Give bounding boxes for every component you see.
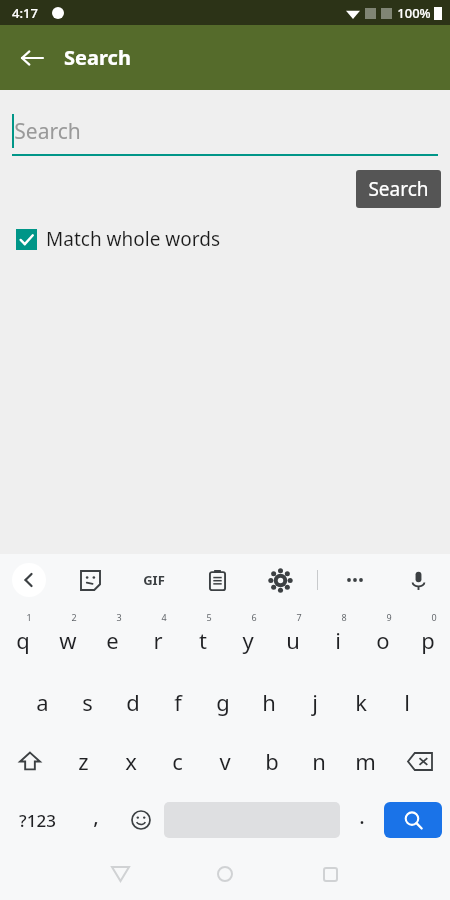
button[interactable]: Home	[205, 854, 245, 894]
button[interactable]: 6	[225, 606, 270, 668]
button[interactable]: 0	[405, 606, 450, 668]
button[interactable]: Collapse toolbar	[12, 563, 46, 597]
button[interactable]: Back	[100, 854, 140, 894]
button[interactable]: 5	[180, 606, 225, 668]
button[interactable]: n	[295, 730, 342, 792]
staticText: a	[36, 687, 49, 717]
staticText: 100%	[397, 4, 431, 22]
staticText: j	[312, 687, 318, 717]
button[interactable]: Back	[10, 36, 54, 80]
staticText: ?123	[19, 809, 56, 832]
button[interactable]: s	[65, 668, 110, 730]
staticText: y	[242, 625, 254, 655]
button[interactable]: c	[154, 730, 201, 792]
button[interactable]: ,	[74, 792, 118, 848]
button[interactable]: g	[200, 668, 246, 730]
staticText: 9	[386, 611, 392, 623]
staticText: d	[126, 687, 140, 717]
staticText: 4:17	[12, 4, 38, 22]
staticText: f	[174, 687, 182, 717]
button[interactable]: k	[338, 668, 384, 730]
staticText: 1	[26, 611, 32, 623]
staticText: 4	[161, 611, 167, 623]
staticText: h	[262, 687, 276, 717]
staticText: w	[59, 625, 77, 655]
staticText: n	[312, 746, 326, 776]
staticText: 7	[296, 611, 302, 623]
staticText: 5	[206, 611, 212, 623]
staticText: m	[355, 746, 376, 776]
button[interactable]: d	[110, 668, 155, 730]
staticText: Search	[14, 117, 81, 146]
button[interactable]: ?123	[0, 792, 74, 848]
staticText: 3	[116, 611, 122, 623]
staticText: .	[359, 803, 365, 830]
button[interactable]: Recents	[310, 854, 350, 894]
button[interactable]: .	[340, 792, 384, 848]
button[interactable]: j	[292, 668, 338, 730]
staticText: e	[106, 625, 119, 655]
button[interactable]: f	[155, 668, 200, 730]
button[interactable]: a	[20, 668, 65, 730]
button[interactable]: 8	[315, 606, 360, 668]
staticText: p	[421, 625, 435, 655]
button[interactable]: z	[60, 730, 107, 792]
button[interactable]: Search	[384, 802, 442, 838]
staticText: o	[376, 625, 390, 655]
button[interactable]: m	[342, 730, 389, 792]
button[interactable]: Match whole words	[0, 222, 450, 258]
button[interactable]: 2	[45, 606, 90, 668]
button[interactable]: Settings	[262, 562, 298, 598]
staticText: v	[219, 746, 231, 776]
button[interactable]: Stickers	[72, 562, 108, 598]
staticText: 2	[71, 611, 77, 623]
staticText: k	[355, 687, 367, 717]
button[interactable]: 4	[135, 606, 180, 668]
button[interactable]: 3	[90, 606, 135, 668]
staticText: c	[172, 746, 183, 776]
button[interactable]: x	[107, 730, 154, 792]
staticText: g	[216, 687, 230, 717]
staticText: b	[265, 746, 279, 776]
button[interactable]: b	[248, 730, 295, 792]
button[interactable]: GIF	[136, 562, 172, 598]
staticText: q	[16, 625, 30, 655]
staticText: 6	[251, 611, 257, 623]
staticText: Search	[368, 176, 429, 202]
staticText: GIF	[143, 571, 165, 589]
button[interactable]: 9	[360, 606, 405, 668]
staticText: r	[153, 625, 163, 655]
staticText: i	[335, 625, 341, 655]
button[interactable]: 1	[0, 606, 45, 668]
button[interactable]: Search	[356, 170, 441, 208]
staticText: u	[286, 625, 300, 655]
button[interactable]: l	[384, 668, 430, 730]
staticText: ,	[93, 803, 99, 830]
button[interactable]: 7	[270, 606, 315, 668]
staticText: t	[199, 625, 207, 655]
button[interactable]: h	[246, 668, 292, 730]
button[interactable]: More options	[337, 562, 373, 598]
staticText: 0	[431, 611, 437, 623]
staticText: Match whole words	[46, 226, 220, 252]
button[interactable]: Emoji	[118, 792, 164, 848]
staticText: 8	[341, 611, 347, 623]
button[interactable]: Clipboard	[199, 562, 235, 598]
button[interactable]: Shift	[0, 730, 60, 792]
button[interactable]: Voice input	[400, 562, 436, 598]
staticText: s	[82, 687, 93, 717]
staticText: l	[404, 687, 410, 717]
button[interactable]: v	[201, 730, 248, 792]
staticText: Search	[64, 44, 131, 71]
staticText: z	[78, 746, 89, 776]
button[interactable]: Search	[0, 90, 450, 156]
button[interactable]: Backspace	[389, 730, 450, 792]
staticText: x	[125, 746, 137, 776]
